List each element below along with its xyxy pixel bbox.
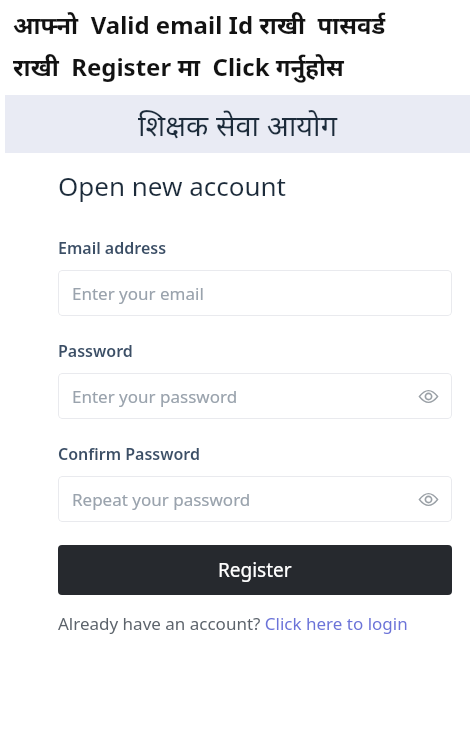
- button[interactable]: Repeat your password: [58, 476, 452, 522]
- staticText: शिक्षक सेवा आयोग: [138, 105, 337, 144]
- staticText: आफ्नो Valid email Id राखी पासवर्ड: [13, 8, 386, 41]
- staticText: राखी Register मा Click गर्नुहोस: [13, 50, 344, 83]
- staticText: Already have an account? Click here to l…: [58, 612, 408, 635]
- staticText: Repeat your password: [72, 488, 416, 511]
- button[interactable]: Already have an account? Click here to l…: [58, 612, 452, 635]
- staticText: Password: [58, 340, 133, 362]
- staticText: Enter your password: [72, 385, 416, 408]
- button[interactable]: Show password: [416, 384, 440, 408]
- button[interactable]: Register: [58, 545, 452, 595]
- staticText: Enter your email: [72, 282, 440, 305]
- button[interactable]: Show password: [416, 487, 440, 511]
- button[interactable]: Enter your password: [58, 373, 452, 419]
- button[interactable]: Enter your email: [58, 270, 452, 316]
- staticText: Confirm Password: [58, 443, 200, 465]
- staticText: Email address: [58, 237, 167, 259]
- staticText: Register: [218, 557, 292, 583]
- staticText: Open new account: [58, 168, 286, 203]
